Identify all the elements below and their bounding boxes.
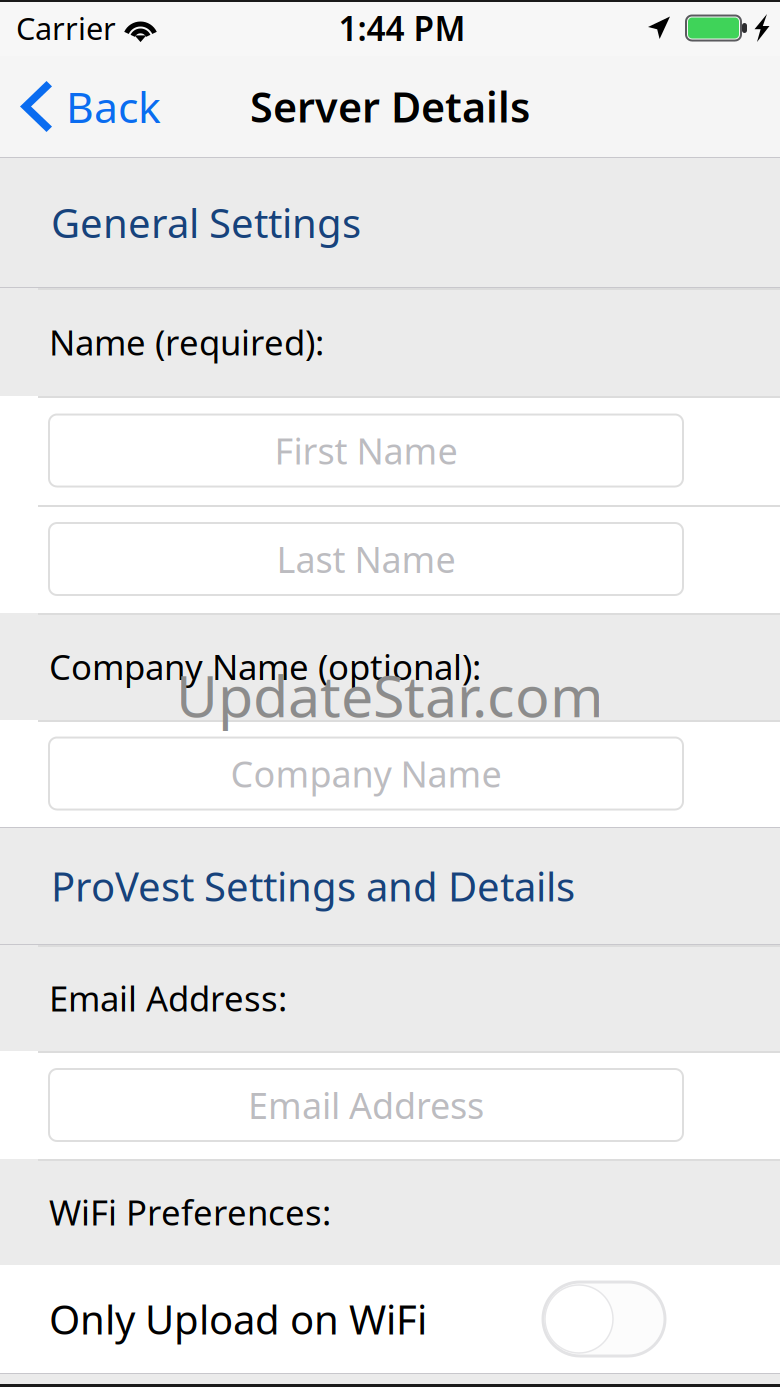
staticText: UpdateStar.com <box>176 657 604 733</box>
button[interactable]: Only Upload on WiFi <box>543 1282 665 1356</box>
staticText: Carrier <box>16 8 116 48</box>
staticText: ProVest Settings and Details <box>51 859 575 912</box>
staticText: WiFi Preferences: <box>49 1189 331 1235</box>
staticText: Last Name <box>276 535 455 583</box>
button[interactable]: First Name <box>49 414 683 486</box>
staticText: Email Address: <box>49 975 287 1021</box>
staticText: First Name <box>274 427 457 474</box>
staticText: Back <box>66 78 161 135</box>
button[interactable]: Email Address <box>49 1069 683 1141</box>
staticText: Company Name <box>230 750 501 797</box>
staticText: Company Name (optional): <box>49 643 481 689</box>
staticText: Only Upload on WiFi <box>49 1292 427 1345</box>
staticText: Server Details <box>250 79 530 134</box>
button[interactable]: Back <box>0 56 177 157</box>
staticText: 1:44 PM <box>338 6 465 50</box>
staticText: Name (required): <box>49 319 324 365</box>
button[interactable]: Last Name <box>49 523 683 595</box>
staticText: Email Address <box>248 1081 484 1129</box>
staticText: General Settings <box>51 196 361 249</box>
button[interactable]: Company Name <box>49 737 683 809</box>
